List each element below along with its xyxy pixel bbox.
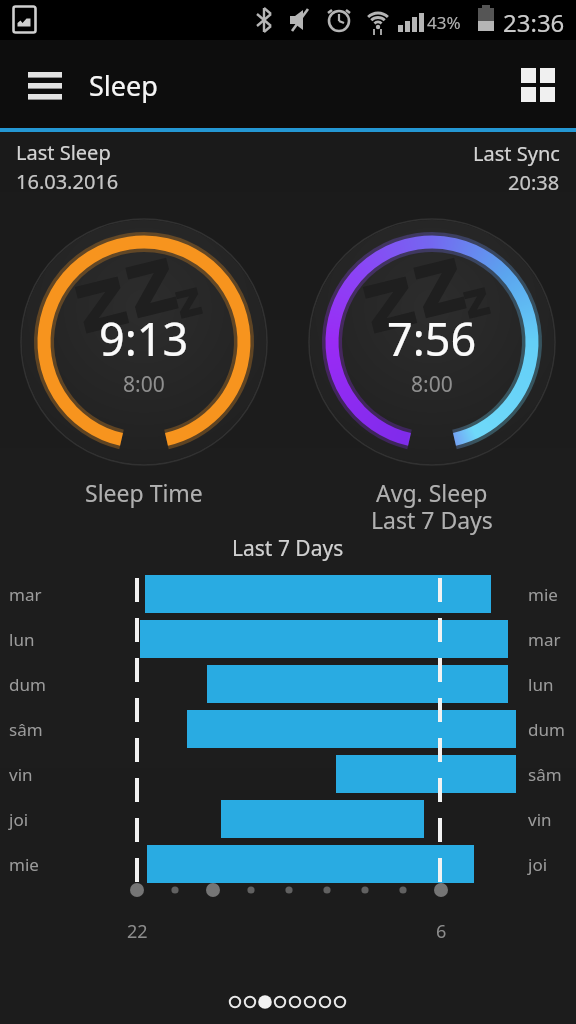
staticText: Sleep Time [85, 477, 203, 508]
staticText: dum [9, 673, 46, 696]
staticText: 22 [127, 919, 148, 944]
staticText: 7:56 [387, 308, 477, 369]
button[interactable] [20, 62, 68, 106]
button[interactable]: 7:56 [288, 198, 576, 486]
staticText: lun [528, 673, 554, 696]
staticText: Last 7 Days [232, 534, 344, 563]
staticText: Last Sync [473, 140, 560, 167]
staticText: Last Sleep [16, 139, 111, 166]
staticText: sâm [9, 718, 43, 741]
staticText: mie [528, 583, 558, 606]
staticText: 6 [436, 919, 447, 944]
staticText: sâm [528, 763, 562, 786]
staticText: 43% [427, 11, 461, 34]
staticText: 9:13 [99, 308, 189, 369]
staticText: mar [9, 583, 42, 606]
staticText: lun [9, 628, 35, 651]
staticText: joi [528, 853, 548, 876]
staticText: mar [528, 628, 561, 651]
staticText: 23:36 [503, 6, 565, 39]
staticText: 20:38 [508, 169, 560, 196]
staticText: 8:00 [123, 370, 165, 399]
staticText: mie [9, 853, 39, 876]
staticText: Last 7 Days [371, 504, 493, 535]
staticText: joi [9, 808, 29, 831]
staticText: dum [528, 718, 565, 741]
staticText: Avg. Sleep [376, 477, 488, 508]
staticText: vin [9, 763, 33, 786]
staticText: 16.03.2016 [16, 168, 119, 195]
staticText: 8:00 [411, 370, 453, 399]
button[interactable] [512, 60, 562, 108]
button[interactable]: 9:13 [0, 198, 288, 486]
staticText: Sleep [89, 67, 158, 104]
staticText: vin [528, 808, 552, 831]
